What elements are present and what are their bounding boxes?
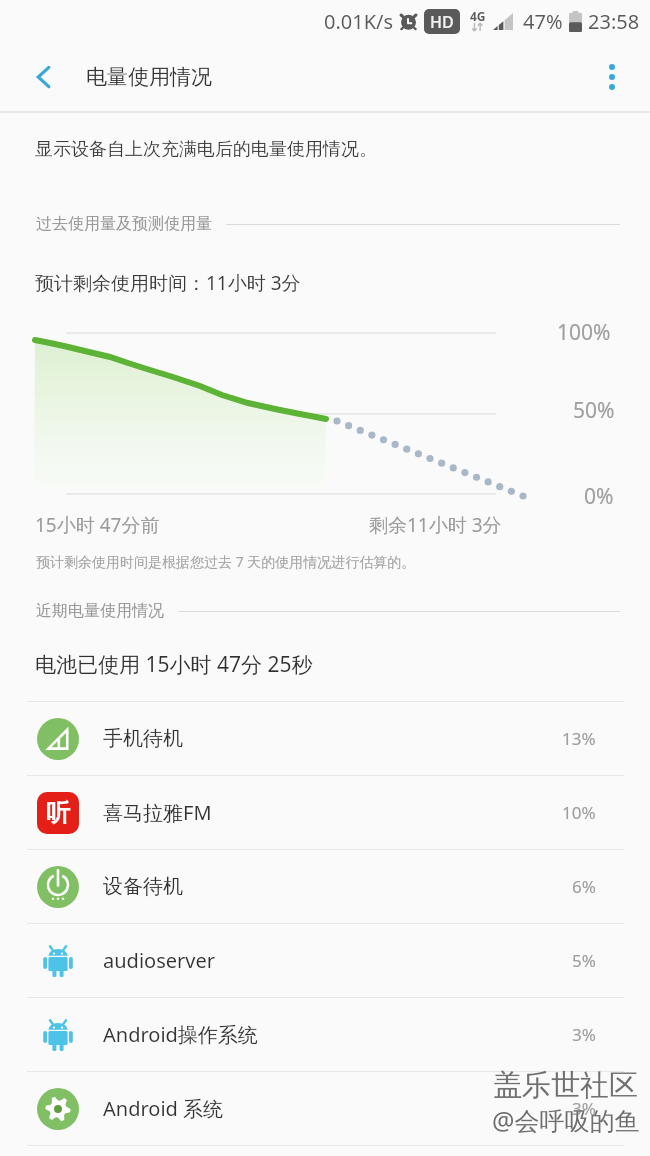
staticText: 4G xyxy=(470,8,486,24)
button[interactable]: audioserver xyxy=(0,924,650,997)
staticText: 5% xyxy=(572,949,596,972)
staticText: HD xyxy=(430,11,454,33)
staticText: audioserver xyxy=(103,947,215,974)
staticText: Android 系统 xyxy=(103,1095,224,1122)
staticText: 电池已使用 15小时 47分 25秒 xyxy=(35,650,313,679)
button[interactable]: Back xyxy=(0,42,88,112)
staticText: Android操作系统 xyxy=(103,1021,258,1048)
staticText: 喜马拉雅FM xyxy=(103,799,212,826)
staticText: 设备待机 xyxy=(103,874,183,899)
staticText: 13% xyxy=(562,727,596,750)
staticText: 10% xyxy=(562,801,596,824)
button[interactable]: Android操作系统 xyxy=(0,998,650,1071)
button[interactable]: Android 系统 xyxy=(0,1072,650,1145)
staticText: 23:58 xyxy=(588,8,640,35)
button[interactable]: More options xyxy=(574,42,650,112)
staticText: 3% xyxy=(572,1097,596,1120)
staticText: 0% xyxy=(584,482,614,511)
staticText: 手机待机 xyxy=(103,726,183,751)
staticText: 近期电量使用情况 xyxy=(36,601,164,621)
staticText: 剩余11小时 3分 xyxy=(369,512,502,538)
staticText: 过去使用量及预测使用量 xyxy=(36,214,212,234)
staticText: 听 xyxy=(46,798,70,828)
staticText: 0.01K/s xyxy=(324,8,394,35)
button[interactable]: 手机待机 xyxy=(0,702,650,775)
staticText: 盖乐世社区 xyxy=(493,1067,638,1104)
staticText: 显示设备自上次充满电后的电量使用情况。 xyxy=(35,138,377,161)
staticText: 3% xyxy=(572,1023,596,1046)
staticText: 47% xyxy=(523,8,563,35)
staticText: 电量使用情况 xyxy=(86,64,212,90)
staticText: @会呼吸的鱼 xyxy=(492,1103,640,1137)
staticText: 15小时 47分前 xyxy=(35,512,160,538)
staticText: 6% xyxy=(572,875,596,898)
button[interactable]: 设备待机 xyxy=(0,850,650,923)
staticText: 预计剩余使用时间是根据您过去 7 天的使用情况进行估算的。 xyxy=(36,552,416,571)
staticText: 100% xyxy=(557,318,611,347)
staticText: 50% xyxy=(573,396,615,425)
button[interactable]: 听 xyxy=(0,776,650,849)
staticText: 预计剩余使用时间：11小时 3分 xyxy=(35,270,301,296)
